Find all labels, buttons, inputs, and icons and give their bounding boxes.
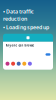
- staticText: Anyone can browse: [5, 44, 34, 47]
- staticText: • Loading speed up: [3, 24, 49, 31]
- staticText: • Data traffic reduction: [3, 8, 34, 22]
